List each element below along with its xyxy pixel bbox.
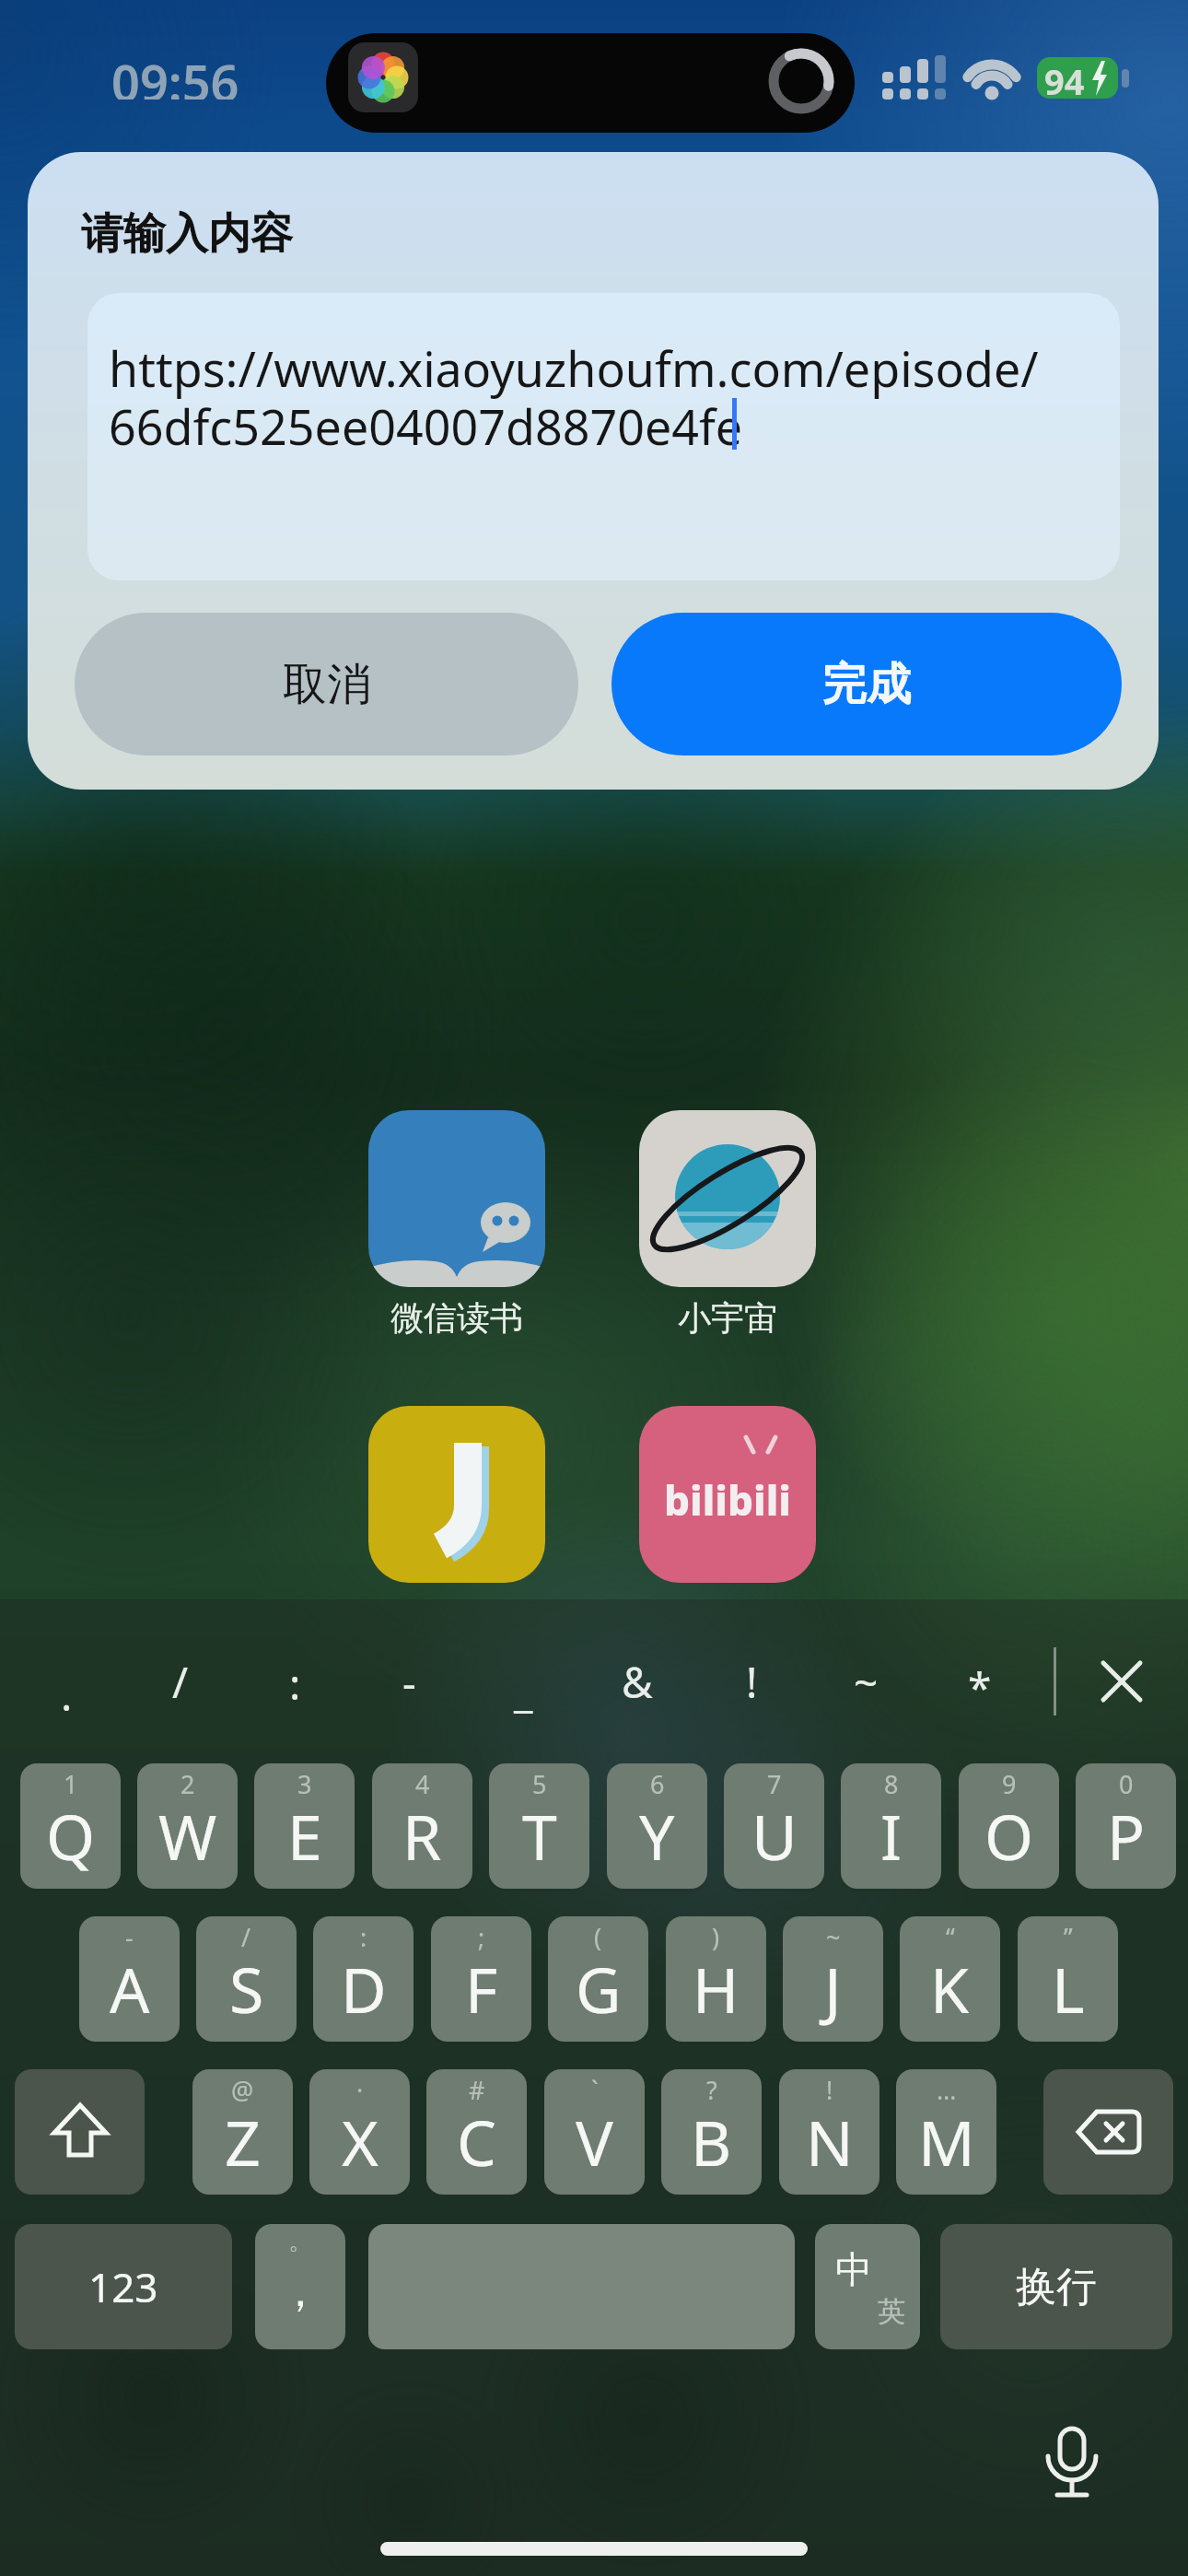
staticText: : (289, 1655, 301, 1713)
button[interactable]: 换行 (940, 2224, 1172, 2349)
button[interactable]: 123 (15, 2224, 232, 2349)
button[interactable]: ! (779, 2069, 879, 2195)
staticText: ! (826, 2073, 833, 2107)
staticText: S (229, 1946, 264, 2032)
button[interactable]: @ (192, 2069, 293, 2195)
staticText: E (287, 1793, 322, 1879)
staticText: bilibili (664, 1472, 791, 1528)
button[interactable]: 4 (372, 1763, 472, 1889)
button[interactable]: 3 (254, 1763, 355, 1889)
staticText: - (402, 1653, 416, 1711)
button[interactable]: - (381, 1649, 437, 1714)
button[interactable]: bilibili (639, 1406, 816, 1583)
staticText: 6 (650, 1767, 665, 1801)
button[interactable]: 1 (20, 1763, 121, 1889)
button[interactable]: _ (495, 1658, 551, 1723)
staticText: : (360, 1920, 367, 1954)
button[interactable]: “ (900, 1916, 1000, 2042)
button[interactable]: * (952, 1655, 1007, 1719)
staticText: 94 (1044, 57, 1085, 99)
button[interactable]: 9 (959, 1763, 1059, 1889)
button[interactable]: # (426, 2069, 527, 2195)
button[interactable]: : (267, 1651, 322, 1715)
button[interactable] (368, 1406, 545, 1583)
button[interactable]: - (79, 1916, 180, 2042)
staticText: 小宇宙 (678, 1297, 777, 1339)
button[interactable]: ” (1018, 1916, 1118, 2042)
staticText: * (968, 1658, 992, 1716)
staticText: 英 (878, 2294, 905, 2329)
staticText: - (125, 1920, 134, 1954)
staticText: 8 (884, 1767, 899, 1801)
button[interactable]: ! (724, 1649, 779, 1714)
staticText: 。 (288, 2226, 312, 2256)
button[interactable]: 2 (137, 1763, 238, 1889)
staticText: K (930, 1946, 970, 2032)
button[interactable]: ; (431, 1916, 531, 2042)
button[interactable]: … (896, 2069, 996, 2195)
staticText: ( (594, 1920, 602, 1954)
staticText: @ (231, 2073, 254, 2107)
staticText: ! (746, 1653, 758, 1711)
button[interactable] (368, 1110, 545, 1287)
staticText: W (158, 1793, 217, 1879)
button[interactable]: & (610, 1649, 665, 1714)
button[interactable]: · (309, 2069, 410, 2195)
staticText: https://www.xiaoyuzhoufm.com/episode/ 66… (109, 335, 1039, 459)
staticText: N (806, 2099, 854, 2184)
button[interactable]: 。 (255, 2224, 345, 2349)
staticText: 2 (181, 1767, 195, 1801)
button[interactable]: https://www.xiaoyuzhoufm.com/episode/ 66… (87, 293, 1120, 580)
staticText: # (469, 2073, 485, 2107)
button[interactable]: ~ (783, 1916, 883, 2042)
staticText: “ (946, 1920, 955, 1954)
button[interactable]: ( (548, 1916, 648, 2042)
staticText: Z (225, 2099, 261, 2184)
staticText: ) (712, 1920, 720, 1954)
staticText: B (691, 2099, 732, 2184)
button[interactable]: ? (661, 2069, 762, 2195)
button[interactable]: 7 (724, 1763, 824, 1889)
staticText: & (622, 1653, 653, 1711)
button[interactable]: . (39, 1662, 94, 1727)
staticText: C (457, 2099, 496, 2184)
button[interactable]: : (313, 1916, 413, 2042)
staticText: ” (1064, 1920, 1073, 1954)
button[interactable]: / (196, 1916, 297, 2042)
staticText: _ (514, 1662, 533, 1720)
button[interactable]: ~ (838, 1649, 893, 1714)
staticText: T (522, 1793, 557, 1879)
staticText: 0 (1119, 1767, 1134, 1801)
button[interactable]: 完成 (611, 613, 1122, 755)
staticText: O (984, 1793, 1034, 1879)
button[interactable]: / (153, 1649, 208, 1714)
button[interactable] (15, 2069, 145, 2195)
staticText: ; (478, 1920, 485, 1954)
button[interactable]: 取消 (75, 613, 578, 755)
button[interactable] (639, 1110, 816, 1287)
button[interactable] (1039, 2427, 1103, 2510)
staticText: 微信读书 (390, 1297, 523, 1339)
staticText: 1 (64, 1767, 78, 1801)
button[interactable]: ) (666, 1916, 766, 2042)
staticText: · (356, 2073, 364, 2107)
button[interactable]: 0 (1076, 1763, 1176, 1889)
button[interactable]: 6 (607, 1763, 707, 1889)
staticText: 123 (88, 2259, 158, 2314)
button[interactable] (1043, 2069, 1173, 2195)
staticText: 中 (835, 2246, 872, 2292)
staticText: 3 (297, 1767, 312, 1801)
staticText: L (1052, 1946, 1085, 2032)
staticText: J (824, 1946, 842, 2032)
staticText: V (576, 2099, 613, 2184)
button[interactable] (1101, 1661, 1142, 1702)
button[interactable]: 中 (815, 2224, 920, 2349)
button[interactable]: 5 (489, 1763, 589, 1889)
staticText: … (937, 2073, 957, 2107)
button[interactable]: 8 (841, 1763, 941, 1889)
staticText: 09:56 (111, 48, 239, 100)
staticText: 取消 (283, 657, 371, 712)
button[interactable] (368, 2224, 795, 2349)
button[interactable]: ` (544, 2069, 645, 2195)
staticText: ? (706, 2073, 717, 2107)
